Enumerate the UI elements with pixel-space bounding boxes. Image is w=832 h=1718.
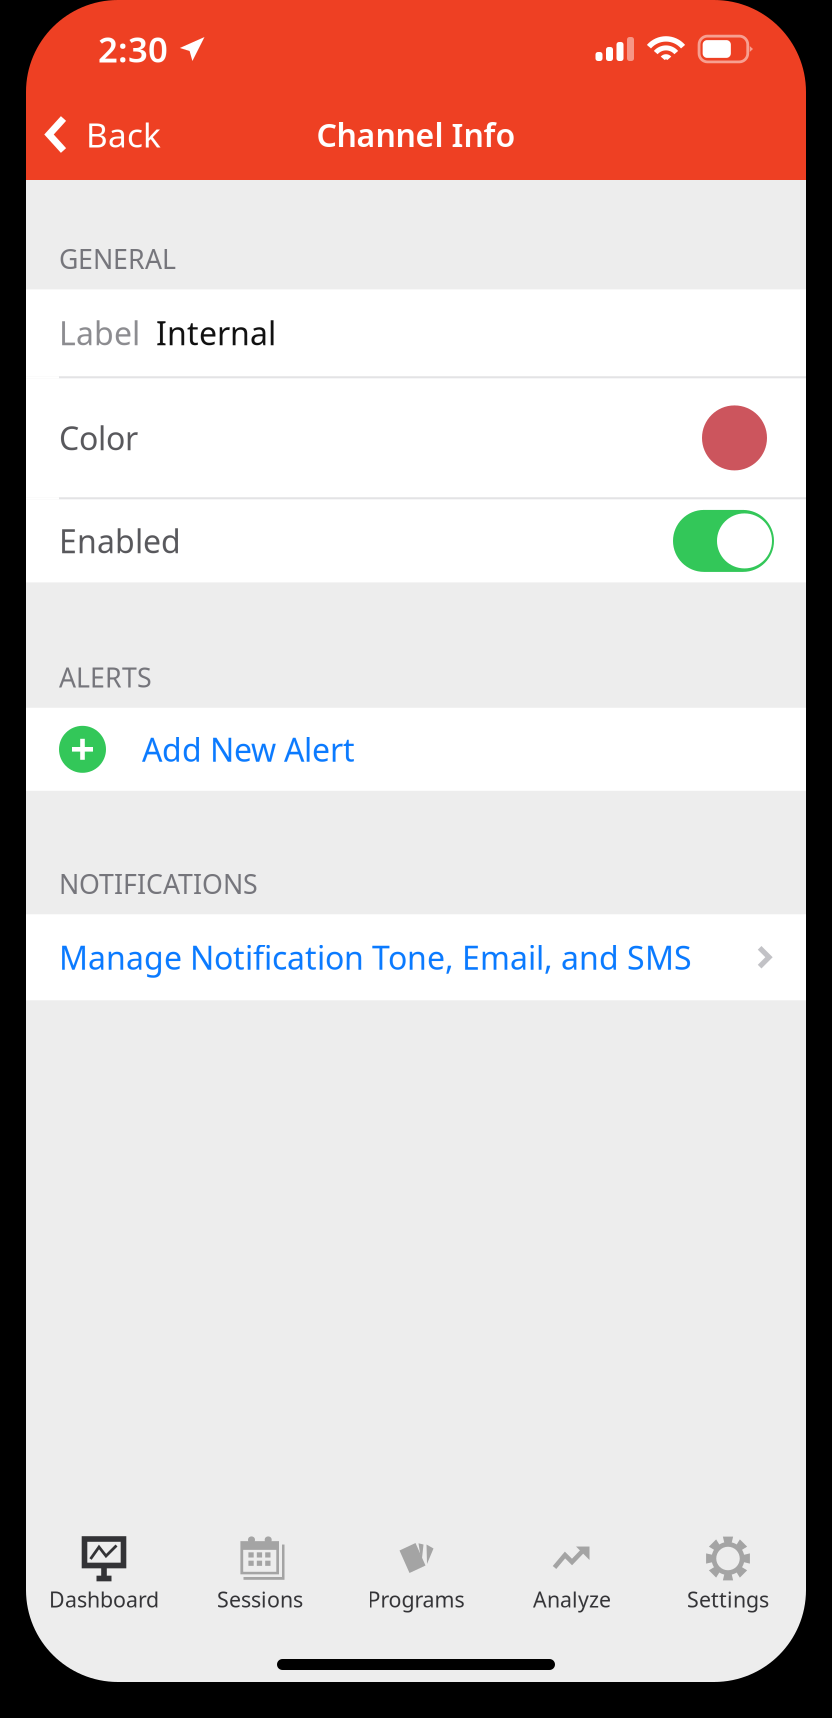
button[interactable]: Color (26, 378, 806, 497)
staticText: Sessions (217, 1585, 303, 1613)
button[interactable]: Label (26, 289, 806, 376)
staticText: Channel Info (316, 113, 515, 156)
staticText: Settings (687, 1585, 769, 1613)
staticText: Dashboard (49, 1585, 159, 1613)
button[interactable]: Sessions (182, 1535, 338, 1612)
button[interactable]: Add New Alert (26, 708, 806, 791)
staticText: 2:30 (98, 26, 168, 72)
staticText: Internal (140, 312, 276, 354)
staticText: Enabled (59, 520, 181, 562)
staticText: Color (59, 417, 138, 459)
button[interactable]: Settings (650, 1535, 806, 1612)
staticText: Back (86, 112, 161, 157)
staticText: Programs (367, 1585, 464, 1613)
button[interactable]: Enabled (26, 499, 806, 582)
button[interactable]: Programs (338, 1535, 494, 1612)
staticText: ALERTS (59, 659, 152, 695)
button[interactable]: Manage Notification Tone, Email, and SMS (26, 914, 806, 1000)
staticText: NOTIFICATIONS (59, 866, 258, 901)
button[interactable]: Dashboard (26, 1535, 182, 1612)
button[interactable]: Back (26, 98, 175, 180)
staticText: Add New Alert (142, 728, 355, 771)
staticText: Manage Notification Tone, Email, and SMS (59, 936, 692, 978)
staticText: Analyze (533, 1585, 611, 1613)
staticText: GENERAL (59, 241, 176, 276)
button[interactable]: Analyze (494, 1535, 650, 1612)
staticText: Label (59, 312, 140, 354)
